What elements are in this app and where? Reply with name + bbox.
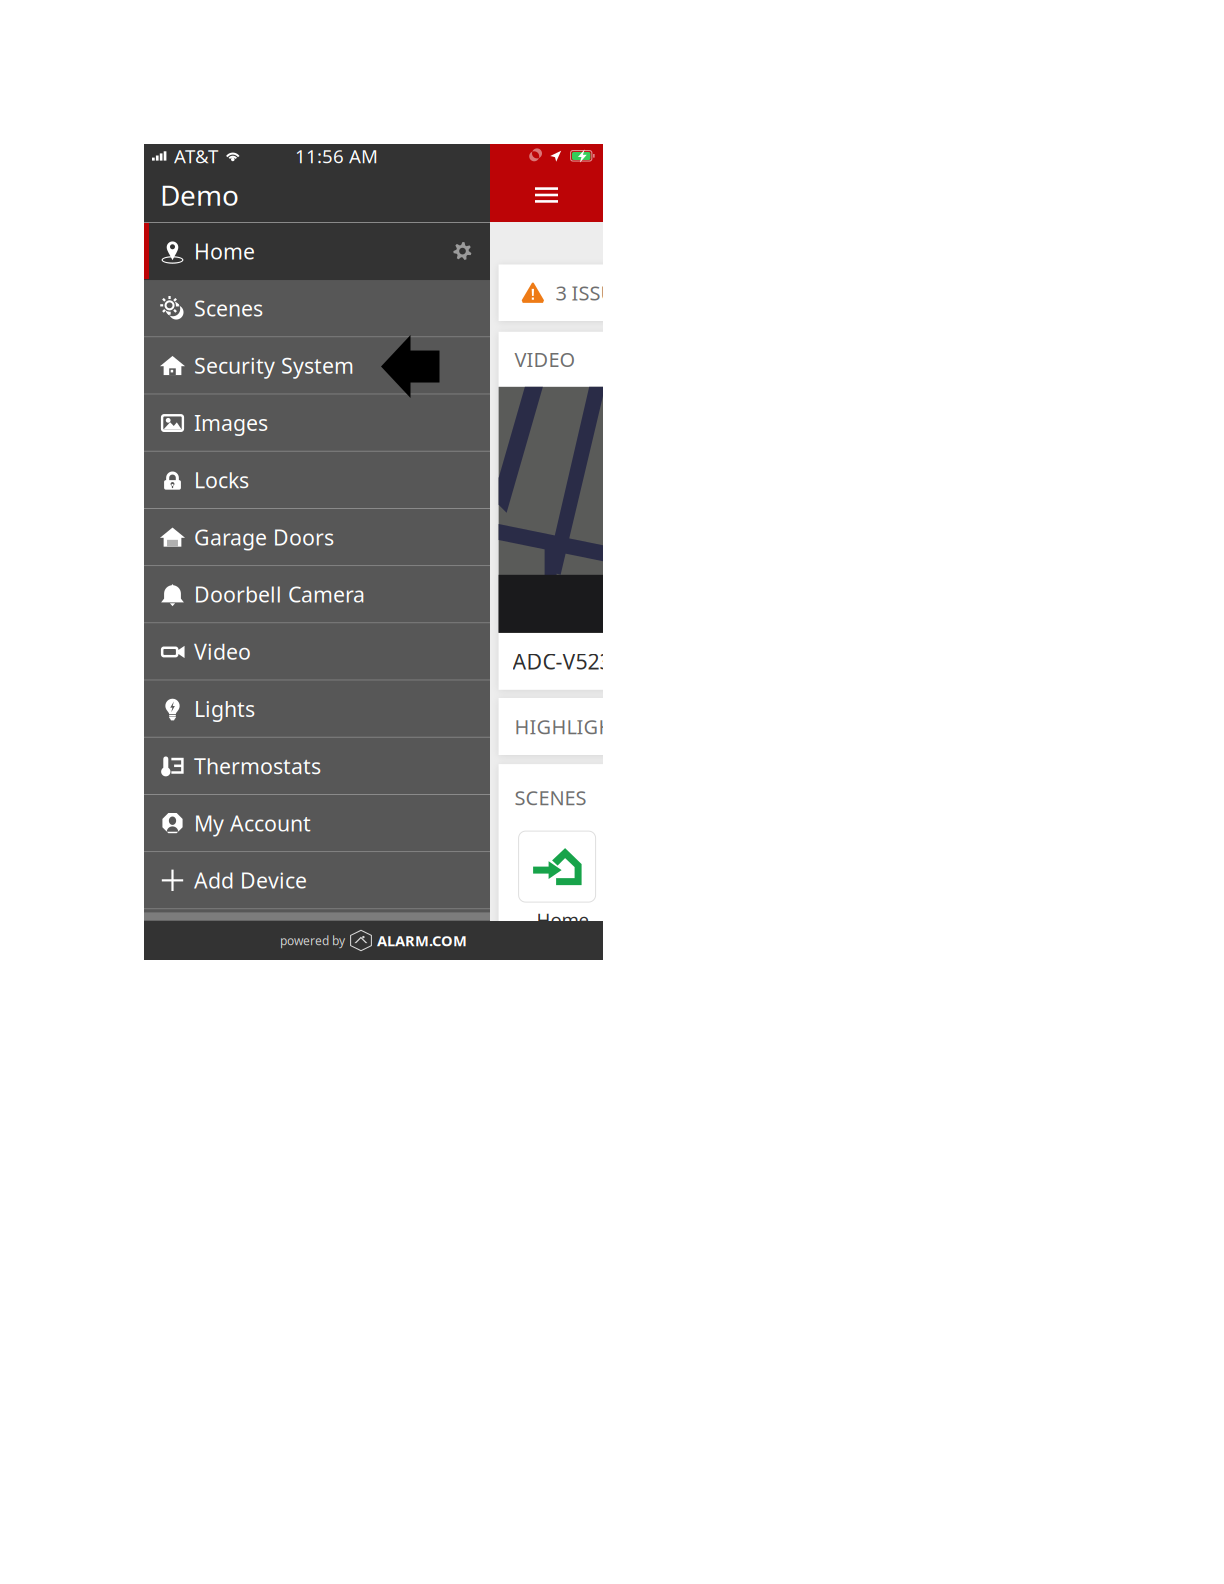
button[interactable]: Scenes: [144, 280, 490, 336]
staticText: HIGHLIGHTS: [515, 713, 636, 740]
staticText: Scenes: [194, 294, 263, 322]
button[interactable]: Menu: [490, 168, 603, 222]
staticText: Thermostats: [194, 752, 321, 780]
staticText: 11:56 AM: [295, 144, 378, 168]
staticText: Garage Doors: [194, 523, 334, 551]
staticText: Home: [194, 237, 255, 265]
button[interactable]: Garage Doors: [144, 509, 490, 565]
button[interactable]: Doorbell Camera: [144, 566, 490, 622]
staticText: Home: [537, 907, 590, 932]
staticText: AT&T: [174, 144, 218, 168]
staticText: Demo: [160, 176, 239, 214]
staticText: Video: [194, 637, 251, 666]
button[interactable]: My Account: [144, 795, 490, 851]
staticText: powered by: [280, 932, 345, 948]
staticText: Security System: [194, 351, 354, 380]
staticText: 3 ISSUES: [556, 279, 638, 306]
button[interactable]: Locks: [144, 452, 490, 508]
button[interactable]: Video: [144, 623, 490, 680]
staticText: Images: [194, 408, 268, 437]
staticText: ADC-V523: [513, 647, 612, 675]
staticText: My Account: [194, 809, 311, 837]
staticText: Lights: [194, 694, 255, 723]
button[interactable]: Security System: [144, 337, 490, 394]
button[interactable]: Home scene: [519, 831, 596, 902]
staticText: Add Device: [194, 866, 307, 894]
button[interactable]: Thermostats: [144, 738, 490, 794]
staticText: Doorbell Camera: [194, 580, 365, 608]
staticText: ALARM.COM: [377, 931, 467, 950]
button[interactable]: Add Device: [144, 852, 490, 908]
staticText: Locks: [194, 466, 249, 494]
button[interactable]: Lights: [144, 681, 490, 737]
staticText: SCENES: [515, 784, 587, 811]
staticText: VIDEO: [515, 346, 576, 373]
button[interactable]: Images: [144, 395, 490, 451]
button[interactable]: Home: [144, 223, 490, 279]
